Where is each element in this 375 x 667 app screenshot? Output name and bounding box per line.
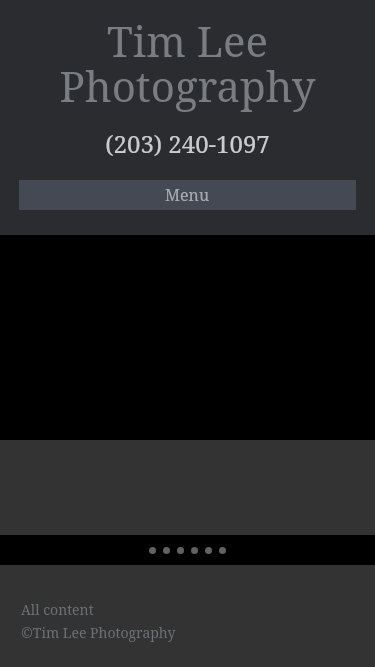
button[interactable]: Menu (19, 180, 356, 210)
other: Slide indicators (145, 544, 229, 556)
button[interactable] (173, 544, 187, 556)
staticText: Menu (165, 184, 210, 206)
button[interactable] (201, 544, 215, 556)
button[interactable] (187, 544, 201, 556)
button[interactable] (215, 544, 229, 556)
staticText: Tim Lee Photography (0, 12, 375, 115)
staticText: All content (21, 600, 94, 619)
staticText: ©Tim Lee Photography (21, 623, 176, 642)
button[interactable] (145, 544, 159, 556)
button[interactable] (159, 544, 173, 556)
staticText: (203) 240-1097 (0, 127, 375, 160)
